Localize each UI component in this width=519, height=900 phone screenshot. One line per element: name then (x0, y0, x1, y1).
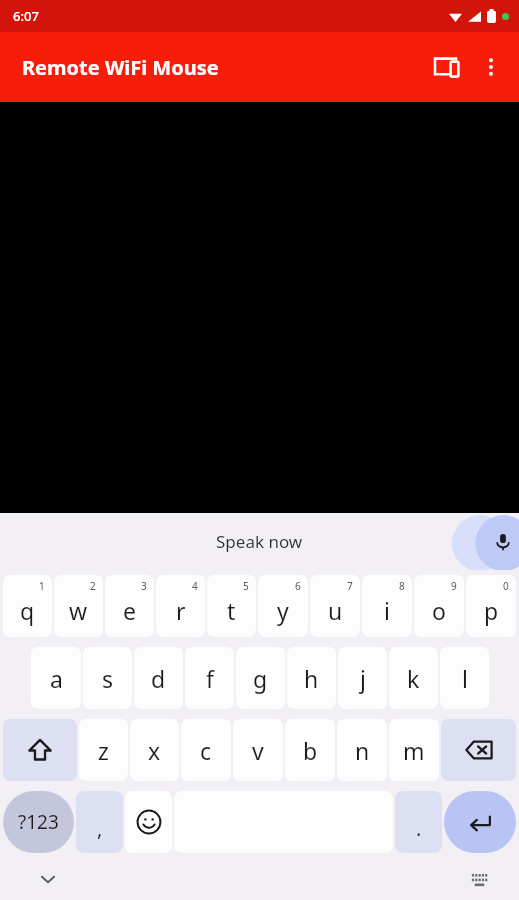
staticText: l (462, 663, 468, 694)
button[interactable]: k (389, 647, 438, 709)
staticText: s (102, 663, 114, 694)
button[interactable]: b (285, 719, 335, 781)
staticText: m (403, 735, 425, 766)
button[interactable]: t (207, 575, 256, 637)
staticText: n (355, 735, 370, 766)
staticText: e (123, 595, 136, 626)
staticText: i (384, 595, 390, 626)
button[interactable]: z (79, 719, 128, 781)
staticText: Speak now (216, 530, 303, 553)
button[interactable]: a (31, 647, 81, 709)
button[interactable]: s (83, 647, 132, 709)
staticText: 1 (39, 579, 45, 593)
button[interactable]: Hide keyboard (32, 863, 64, 895)
staticText: 2 (90, 579, 96, 593)
button[interactable]: o (414, 575, 464, 637)
staticText: , (97, 815, 103, 842)
button[interactable]: . (395, 791, 442, 853)
staticText: r (176, 595, 186, 626)
staticText: f (206, 663, 214, 694)
button[interactable]: l (440, 647, 489, 709)
staticText: q (20, 595, 35, 626)
staticText: 3 (141, 579, 147, 593)
staticText: c (200, 735, 212, 766)
button[interactable]: Backspace (441, 719, 516, 781)
button[interactable]: v (233, 719, 283, 781)
staticText: z (98, 735, 109, 766)
button[interactable]: h (287, 647, 336, 709)
button[interactable]: More options (471, 43, 511, 91)
button[interactable]: r (156, 575, 205, 637)
button[interactable]: e (105, 575, 154, 637)
button[interactable]: Change keyboard (463, 863, 495, 895)
button[interactable]: u (310, 575, 360, 637)
staticText: 9 (451, 579, 457, 593)
staticText: o (432, 595, 446, 626)
staticText: y (277, 595, 289, 626)
button[interactable]: Shift (3, 719, 77, 781)
staticText: d (151, 663, 166, 694)
button[interactable]: g (236, 647, 285, 709)
button[interactable]: , (76, 791, 123, 853)
staticText: p (484, 595, 499, 626)
button[interactable]: d (134, 647, 183, 709)
staticText: 4 (192, 579, 198, 593)
button[interactable]: x (130, 719, 179, 781)
staticText: . (416, 815, 422, 842)
button[interactable]: p (466, 575, 516, 637)
staticText: h (304, 663, 319, 694)
button[interactable]: m (389, 719, 439, 781)
staticText: 6 (295, 579, 301, 593)
staticText: j (360, 663, 366, 694)
staticText: 5 (243, 579, 249, 593)
button[interactable]: Cast (423, 43, 471, 91)
staticText: a (50, 663, 63, 694)
staticText: 7 (347, 579, 353, 593)
staticText: ?123 (18, 809, 59, 835)
staticText: 8 (399, 579, 405, 593)
button[interactable]: f (185, 647, 234, 709)
staticText: b (303, 735, 318, 766)
staticText: k (407, 663, 420, 694)
button[interactable]: q (3, 575, 52, 637)
staticText: 6:07 (13, 7, 39, 25)
staticText: u (328, 595, 343, 626)
button[interactable]: ?123 (3, 791, 74, 853)
button[interactable]: n (337, 719, 387, 781)
button[interactable]: Enter (444, 791, 516, 853)
staticText: x (148, 735, 161, 766)
button[interactable]: j (338, 647, 387, 709)
button[interactable]: c (181, 719, 231, 781)
staticText: Remote WiFi Mouse (22, 54, 219, 81)
button[interactable]: w (54, 575, 103, 637)
button[interactable]: i (362, 575, 412, 637)
staticText: g (253, 663, 268, 694)
staticText: t (227, 595, 236, 626)
button[interactable]: Voice input (463, 514, 519, 570)
button[interactable]: y (258, 575, 308, 637)
staticText: v (252, 735, 264, 766)
staticText: 0 (503, 579, 509, 593)
staticText: w (69, 595, 88, 626)
button[interactable]: Emoji (125, 791, 172, 853)
